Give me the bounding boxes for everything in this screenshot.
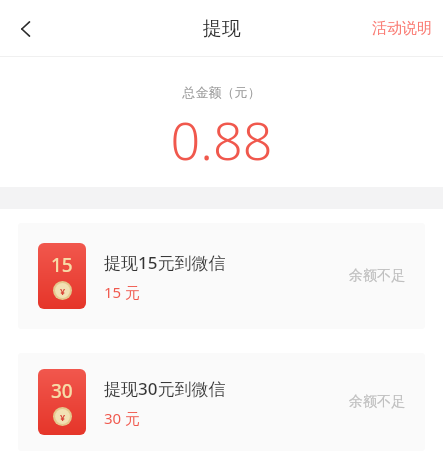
button[interactable]: Back	[0, 3, 52, 55]
staticText: 30	[51, 378, 73, 404]
staticText: 总金额（元）	[0, 84, 443, 100]
staticText: 0.88	[0, 104, 443, 175]
staticText: 提现	[203, 17, 241, 41]
staticText: 余额不足	[349, 267, 405, 285]
staticText: 提现15元到微信	[104, 251, 226, 274]
staticText: 余额不足	[349, 393, 405, 411]
button[interactable]: 活动说明	[361, 10, 443, 47]
button[interactable]: 30	[18, 353, 425, 451]
staticText: 提现30元到微信	[104, 377, 226, 400]
staticText: ¥	[60, 411, 66, 423]
staticText: 15	[51, 252, 73, 278]
staticText: 30 元	[104, 408, 141, 428]
staticText: 活动说明	[372, 19, 432, 38]
staticText: ¥	[60, 285, 66, 297]
staticText: 15 元	[104, 282, 141, 302]
button[interactable]: 15	[18, 223, 425, 329]
